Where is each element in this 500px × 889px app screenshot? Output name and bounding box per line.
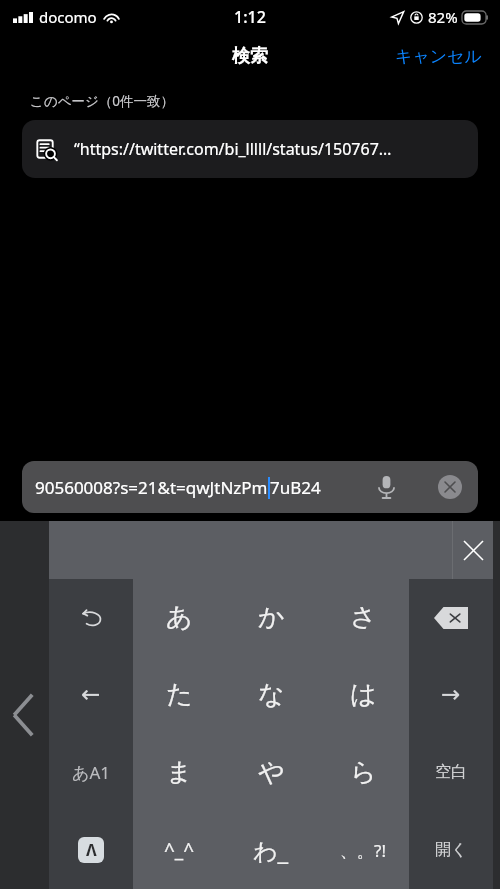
staticText: や <box>258 756 285 789</box>
button[interactable]: ^_^ <box>133 811 225 889</box>
button[interactable]: ま <box>133 733 225 811</box>
staticText: か <box>258 601 285 634</box>
staticText: ら <box>350 756 377 789</box>
staticText: Λ <box>86 839 97 861</box>
button[interactable]: あ <box>133 579 225 656</box>
staticText: 82% <box>428 7 458 27</box>
button[interactable]: あA1 <box>49 733 133 811</box>
button[interactable]: 空白 <box>409 733 493 811</box>
staticText: 7uB24 <box>270 476 321 499</box>
staticText: “https://twitter.com/bi_lllll/status/150… <box>74 138 392 160</box>
button[interactable]: Collapse keyboard <box>12 692 34 738</box>
button[interactable]: か <box>225 579 317 656</box>
button[interactable]: Clear text <box>438 475 462 499</box>
staticText: さ <box>350 601 377 634</box>
staticText: このページ（0件一致） <box>30 92 174 110</box>
staticText: ま <box>166 756 193 789</box>
staticText: な <box>258 678 285 711</box>
staticText: た <box>166 678 193 711</box>
button[interactable]: わ_ <box>225 811 317 889</box>
staticText: は <box>350 678 377 711</box>
button[interactable]: 、。?! <box>317 811 409 889</box>
button[interactable]: 開く <box>409 811 493 889</box>
button[interactable]: や <box>225 733 317 811</box>
button[interactable]: Keyboard settings <box>49 811 133 889</box>
staticText: docomo <box>39 7 97 27</box>
button[interactable]: ← <box>49 656 133 733</box>
staticText: → <box>441 681 461 708</box>
button[interactable]: → <box>409 656 493 733</box>
button[interactable]: Undo <box>49 579 133 656</box>
staticText: あA1 <box>72 761 110 784</box>
button[interactable]: た <box>133 656 225 733</box>
staticText: 空白 <box>435 762 467 782</box>
staticText: 1:12 <box>234 6 266 28</box>
button[interactable]: 90560008?s=21&t=qwJtNzPm <box>22 461 478 513</box>
staticText: 検索 <box>232 45 268 68</box>
staticText: わ_ <box>253 834 289 867</box>
button[interactable]: さ <box>317 579 409 656</box>
button[interactable]: キャンセル <box>377 38 500 75</box>
staticText: 、。?! <box>340 839 386 862</box>
staticText: 90560008?s=21&t=qwJtNzPm <box>35 476 268 499</box>
button[interactable]: な <box>225 656 317 733</box>
staticText: ^_^ <box>164 837 195 863</box>
button[interactable]: は <box>317 656 409 733</box>
staticText: 開く <box>435 840 468 860</box>
button[interactable]: Backspace <box>409 579 493 656</box>
staticText: キャンセル <box>395 46 482 67</box>
staticText: ← <box>81 681 101 708</box>
button[interactable]: Close candidates <box>453 521 493 579</box>
staticText: あ <box>166 601 193 634</box>
button[interactable]: Voice input <box>379 476 394 498</box>
button[interactable]: ら <box>317 733 409 811</box>
button[interactable]: “https://twitter.com/bi_lllll/status/150… <box>22 120 478 178</box>
